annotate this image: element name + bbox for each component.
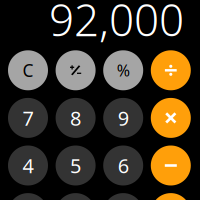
- button[interactable]: 2: [56, 193, 96, 200]
- button[interactable]: 7: [8, 98, 48, 138]
- button[interactable]: Minus: [151, 145, 191, 185]
- staticText: 7: [22, 105, 33, 131]
- button[interactable]: 3: [103, 193, 143, 200]
- staticText: 92,000: [49, 0, 184, 48]
- button[interactable]: Multiply: [151, 98, 191, 138]
- staticText: 9: [118, 105, 129, 131]
- button[interactable]: 8: [56, 98, 96, 138]
- button[interactable]: C: [8, 50, 48, 90]
- button[interactable]: 4: [8, 145, 48, 185]
- staticText: 4: [22, 152, 33, 179]
- button[interactable]: 6: [103, 145, 143, 185]
- staticText: %: [117, 60, 130, 81]
- button[interactable]: Plus minus: [56, 50, 96, 90]
- staticText: 8: [70, 105, 81, 131]
- button[interactable]: 9: [103, 98, 143, 138]
- button[interactable]: Plus: [151, 193, 191, 200]
- staticText: C: [22, 59, 33, 82]
- button[interactable]: %: [103, 50, 143, 90]
- staticText: 5: [70, 152, 81, 179]
- staticText: 6: [118, 152, 129, 179]
- button[interactable]: 5: [56, 145, 96, 185]
- button[interactable]: Divide: [151, 50, 191, 90]
- button[interactable]: 1: [8, 193, 48, 200]
